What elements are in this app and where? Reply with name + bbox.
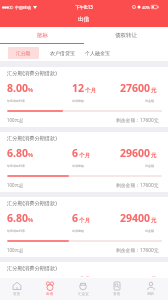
staticText: 个月 — [85, 87, 97, 94]
staticText: 总金额 — [145, 229, 154, 233]
button[interactable]: 出借 — [33, 278, 66, 300]
staticText: 元 — [151, 276, 157, 277]
staticText: 中国移动 — [15, 5, 31, 10]
staticText: 元 — [151, 217, 157, 224]
button[interactable]: 汇分期(消费分期借款) — [0, 197, 168, 257]
staticText: 汇分期(消费分期借款) — [7, 264, 57, 271]
staticText: % — [28, 216, 34, 224]
staticText: % — [28, 86, 34, 94]
staticText: 资讯 — [113, 292, 121, 297]
staticText: 100元起 — [7, 247, 24, 253]
button[interactable]: 个人融金宝 — [85, 47, 110, 59]
button[interactable]: 汇分期 — [8, 47, 39, 59]
staticText: 年化借款利率 — [7, 229, 25, 233]
button[interactable]: 散标 — [0, 27, 84, 44]
staticText: 剩余金额：17600元 — [116, 117, 159, 124]
staticText: 出借 — [46, 292, 54, 297]
button[interactable]: 资讯 — [100, 278, 134, 300]
staticText: 剩余金额：17600元 — [116, 182, 159, 189]
staticText: 个月 — [79, 217, 91, 224]
staticText: 6.80 — [7, 146, 28, 160]
staticText: 8.00 — [7, 81, 28, 95]
staticText: 27600 — [120, 81, 151, 95]
staticText: 总金额 — [145, 99, 154, 103]
staticText: 首页 — [13, 292, 21, 297]
button[interactable]: 汇金宝 — [66, 278, 100, 300]
staticText: 个月 — [79, 152, 91, 159]
staticText: 100元起 — [7, 182, 24, 188]
staticText: 29600 — [120, 146, 151, 160]
staticText: 29400 — [120, 211, 151, 225]
button[interactable]: 首页 — [0, 278, 33, 300]
staticText: 下午8:13 — [75, 4, 93, 10]
staticText: 12 — [72, 81, 85, 95]
staticText: 剩余金额：17600元 — [116, 247, 159, 254]
staticText: 元 — [151, 152, 157, 159]
staticText: 我的 — [147, 292, 155, 297]
staticText: 汇分期 — [16, 50, 31, 56]
staticText: 农户借贷宝 — [50, 50, 75, 56]
staticText: 年化借款利率 — [7, 164, 25, 168]
staticText: 汇分期(消费分期借款) — [7, 134, 57, 141]
staticText: 年化借款利率 — [7, 99, 25, 103]
staticText: 散标 — [37, 32, 48, 39]
staticText: 汇金宝 — [78, 292, 89, 297]
button[interactable]: 债权转让 — [84, 27, 168, 44]
staticText: 100元起 — [7, 117, 24, 123]
staticText: 汇分期(消费分期借款) — [7, 199, 57, 206]
button[interactable]: 我的 — [134, 278, 168, 300]
staticText: % — [28, 151, 34, 159]
staticText: 出借期限 — [72, 164, 84, 168]
staticText: 汇分期(消费分期借款) — [7, 69, 57, 76]
staticText: 个月 — [79, 276, 91, 277]
staticText: 6 — [72, 146, 79, 160]
button[interactable]: 农户借贷宝 — [50, 47, 75, 59]
staticText: 出借期限 — [72, 99, 84, 103]
staticText: 出借期限 — [72, 229, 84, 233]
staticText: 债权转让 — [115, 32, 137, 39]
staticText: 6.80 — [7, 211, 28, 225]
staticText: 元 — [151, 87, 157, 94]
staticText: 总金额 — [145, 164, 154, 168]
staticText: 40% — [142, 5, 150, 10]
button[interactable]: 汇分期(消费分期借款) — [0, 132, 168, 192]
button[interactable]: 汇分期(消费分期借款) — [0, 67, 168, 127]
staticText: 6 — [72, 211, 79, 225]
staticText: 个人融金宝 — [85, 50, 110, 56]
button[interactable]: 汇分期(消费分期借款) — [0, 262, 168, 278]
staticText: 出借 — [78, 16, 90, 23]
